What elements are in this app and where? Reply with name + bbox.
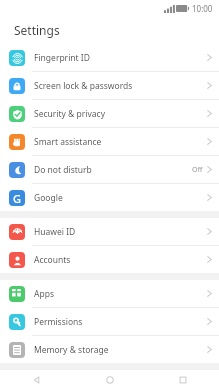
button[interactable]: Back [0,370,73,390]
staticText: Memory & storage [34,344,207,356]
staticText: Settings [14,22,60,38]
button[interactable]: Smart assistance [0,128,219,155]
staticText: Fingerprint ID [34,52,207,64]
staticText: Permissions [34,316,207,328]
staticText: Do not disturb [34,164,192,176]
button[interactable]: Do not disturb [0,156,219,183]
button[interactable]: Security & privacy [0,100,219,127]
button[interactable]: Permissions [0,308,219,335]
staticText: Huawei ID [34,226,207,238]
button[interactable]: Apps [0,280,219,307]
button[interactable]: Home [73,370,146,390]
button[interactable]: Huawei ID [0,218,219,245]
button[interactable]: Memory & storage [0,336,219,363]
button[interactable]: Recent apps [146,370,219,390]
staticText: Security & privacy [34,108,207,120]
staticText: G [13,191,21,206]
staticText: Off [192,165,203,175]
staticText: Google [34,192,207,204]
button[interactable]: Fingerprint ID [0,44,219,71]
staticText: Screen lock & passwords [34,80,207,92]
button[interactable]: G [0,184,219,211]
staticText: 10:00 [192,3,213,14]
button[interactable]: Accounts [0,246,219,273]
staticText: Smart assistance [34,136,207,148]
button[interactable]: Screen lock & passwords [0,72,219,99]
staticText: Accounts [34,254,207,266]
staticText: Apps [34,288,207,300]
